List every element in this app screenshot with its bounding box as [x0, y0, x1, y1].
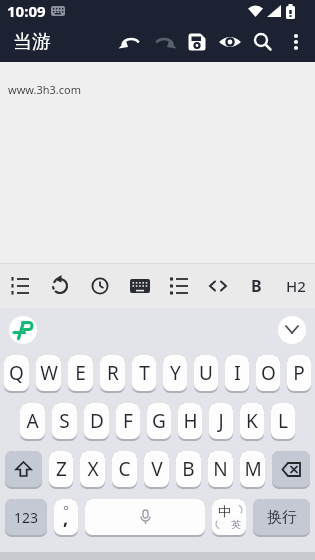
staticText: P [293, 360, 305, 386]
button[interactable] [279, 22, 312, 62]
button[interactable] [180, 22, 213, 62]
button[interactable]: G [147, 403, 171, 441]
button[interactable]: M [240, 451, 265, 489]
staticText: W [40, 360, 58, 386]
button[interactable]: 中 [212, 499, 246, 537]
staticText: 中 [218, 503, 231, 519]
button[interactable]: B [176, 451, 201, 489]
button[interactable] [278, 316, 306, 344]
button[interactable]: H [178, 403, 202, 441]
button[interactable] [0, 264, 40, 308]
staticText: 换行 [267, 508, 297, 527]
staticText: D [90, 408, 104, 434]
button[interactable] [114, 22, 147, 62]
staticText: E [75, 360, 86, 386]
staticText: H [183, 408, 198, 434]
button[interactable]: D [84, 403, 109, 441]
button[interactable]: 123 [5, 499, 47, 537]
button[interactable] [9, 316, 37, 344]
staticText: B [182, 456, 195, 482]
staticText: H2 [286, 276, 306, 296]
staticText: S [59, 408, 70, 434]
button[interactable] [80, 264, 120, 308]
button[interactable]: O [256, 355, 280, 393]
staticText: O [261, 360, 276, 386]
staticText: M [244, 456, 262, 482]
button[interactable]: , [54, 499, 78, 537]
staticText: Y [170, 360, 181, 386]
button[interactable]: F [116, 403, 140, 441]
button[interactable]: U [194, 355, 218, 393]
button[interactable] [85, 499, 205, 537]
button[interactable]: E [68, 355, 93, 393]
button[interactable]: W [36, 355, 61, 393]
button[interactable] [120, 264, 159, 308]
button[interactable]: C [112, 451, 137, 489]
staticText: L [278, 408, 288, 434]
staticText: B [251, 275, 262, 297]
button[interactable]: S [52, 403, 77, 441]
button[interactable] [246, 22, 279, 62]
staticText: www.3h3.com [8, 82, 81, 97]
button[interactable]: Q [4, 355, 29, 393]
button[interactable]: Y [163, 355, 187, 393]
button[interactable]: 换行 [253, 499, 310, 537]
staticText: Q [9, 360, 24, 386]
button[interactable] [272, 451, 310, 489]
button[interactable] [213, 22, 246, 62]
button[interactable]: T [132, 355, 156, 393]
button[interactable]: P [287, 355, 311, 393]
button[interactable]: N [208, 451, 233, 489]
button[interactable]: V [144, 451, 169, 489]
button[interactable]: J [209, 403, 233, 441]
staticText: 当游 [13, 30, 51, 54]
button[interactable] [5, 451, 42, 489]
button[interactable]: L [271, 403, 295, 441]
staticText: R [107, 360, 119, 386]
button[interactable]: B [237, 264, 276, 308]
staticText: X [87, 456, 99, 482]
staticText: J [218, 408, 224, 434]
button[interactable]: I [225, 355, 249, 393]
staticText: U [199, 360, 213, 386]
button[interactable] [40, 264, 80, 308]
button[interactable]: R [100, 355, 125, 393]
button[interactable]: Z [49, 451, 73, 489]
staticText: Z [56, 456, 67, 482]
staticText: G [152, 408, 166, 434]
button[interactable]: H2 [276, 264, 315, 308]
button[interactable]: X [80, 451, 105, 489]
button[interactable] [159, 264, 198, 308]
staticText: N [213, 456, 228, 482]
staticText: 英 [231, 518, 241, 531]
staticText: 123 [14, 508, 39, 527]
staticText: , [63, 506, 69, 531]
staticText: K [246, 408, 258, 434]
button[interactable]: K [240, 403, 264, 441]
button[interactable] [198, 264, 237, 308]
staticText: A [26, 408, 39, 434]
button[interactable] [147, 22, 180, 62]
staticText: V [151, 456, 163, 482]
staticText: I [234, 360, 241, 386]
staticText: F [123, 408, 133, 434]
staticText: C [118, 456, 131, 482]
button[interactable]: A [20, 403, 45, 441]
staticText: 10:09 [7, 1, 46, 21]
staticText: T [139, 360, 150, 386]
